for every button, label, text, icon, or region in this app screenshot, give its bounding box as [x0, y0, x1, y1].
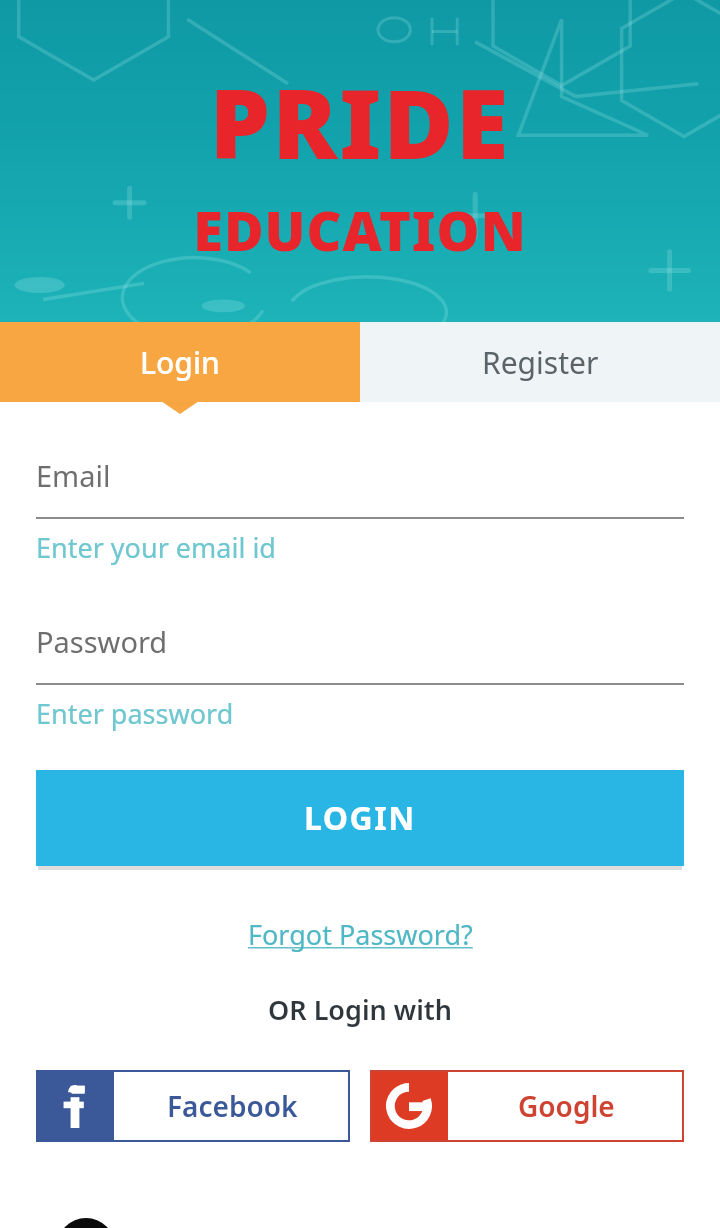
button[interactable]: Login	[0, 322, 360, 402]
button[interactable]: Email	[36, 456, 684, 566]
staticText: PRIDE	[209, 56, 511, 187]
staticText: LOGIN	[304, 796, 416, 840]
button[interactable]: LOGIN	[36, 770, 684, 866]
staticText: Enter password	[36, 695, 234, 732]
staticText: EDUCATION	[193, 193, 527, 267]
staticText: Enter your email id	[36, 529, 276, 566]
other: Sign in with Google	[386, 1083, 432, 1129]
button[interactable]: Sign in with Twitter	[57, 1218, 115, 1228]
button[interactable]: Forgot Password?	[240, 912, 481, 957]
other: Sign in with Facebook	[53, 1084, 97, 1128]
staticText: Email	[36, 456, 111, 495]
button[interactable]: Register	[360, 322, 720, 402]
button[interactable]: Password	[36, 622, 684, 732]
button[interactable]: Sign in with Facebook	[36, 1070, 350, 1142]
staticText: Login	[140, 342, 220, 383]
staticText: Password	[36, 622, 168, 661]
staticText: Google	[518, 1087, 615, 1125]
staticText: Register	[482, 342, 599, 383]
staticText: OR Login with	[268, 991, 453, 1028]
button[interactable]: Sign in with Google	[370, 1070, 684, 1142]
staticText: Facebook	[167, 1087, 298, 1125]
staticText: Forgot Password?	[248, 916, 473, 953]
